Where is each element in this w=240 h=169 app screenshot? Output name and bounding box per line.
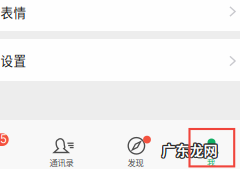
staticText: 广东龙网: [161, 140, 217, 161]
staticText: 广东龙网: [162, 138, 218, 159]
staticText: 广东龙网: [161, 138, 217, 159]
staticText: 广东龙网: [161, 138, 217, 159]
staticText: 5: [0, 132, 7, 146]
staticText: 发现: [128, 156, 144, 168]
staticText: 广东龙网: [160, 139, 216, 160]
staticText: 设置: [0, 51, 26, 69]
staticText: 通讯录: [49, 156, 73, 168]
button[interactable]: 通讯录: [24, 120, 98, 169]
button[interactable]: 设置: [0, 39, 240, 81]
button[interactable]: 表情: [0, 0, 240, 31]
staticText: 广东龙网: [162, 140, 218, 161]
staticText: 表情: [0, 3, 26, 21]
staticText: 广东龙网: [163, 139, 219, 160]
staticText: 我: [207, 156, 215, 168]
button[interactable]: 发现: [99, 120, 173, 169]
button[interactable]: 我: [174, 120, 240, 169]
staticText: 广东龙网: [161, 139, 217, 160]
staticText: 广东龙网: [161, 140, 217, 161]
